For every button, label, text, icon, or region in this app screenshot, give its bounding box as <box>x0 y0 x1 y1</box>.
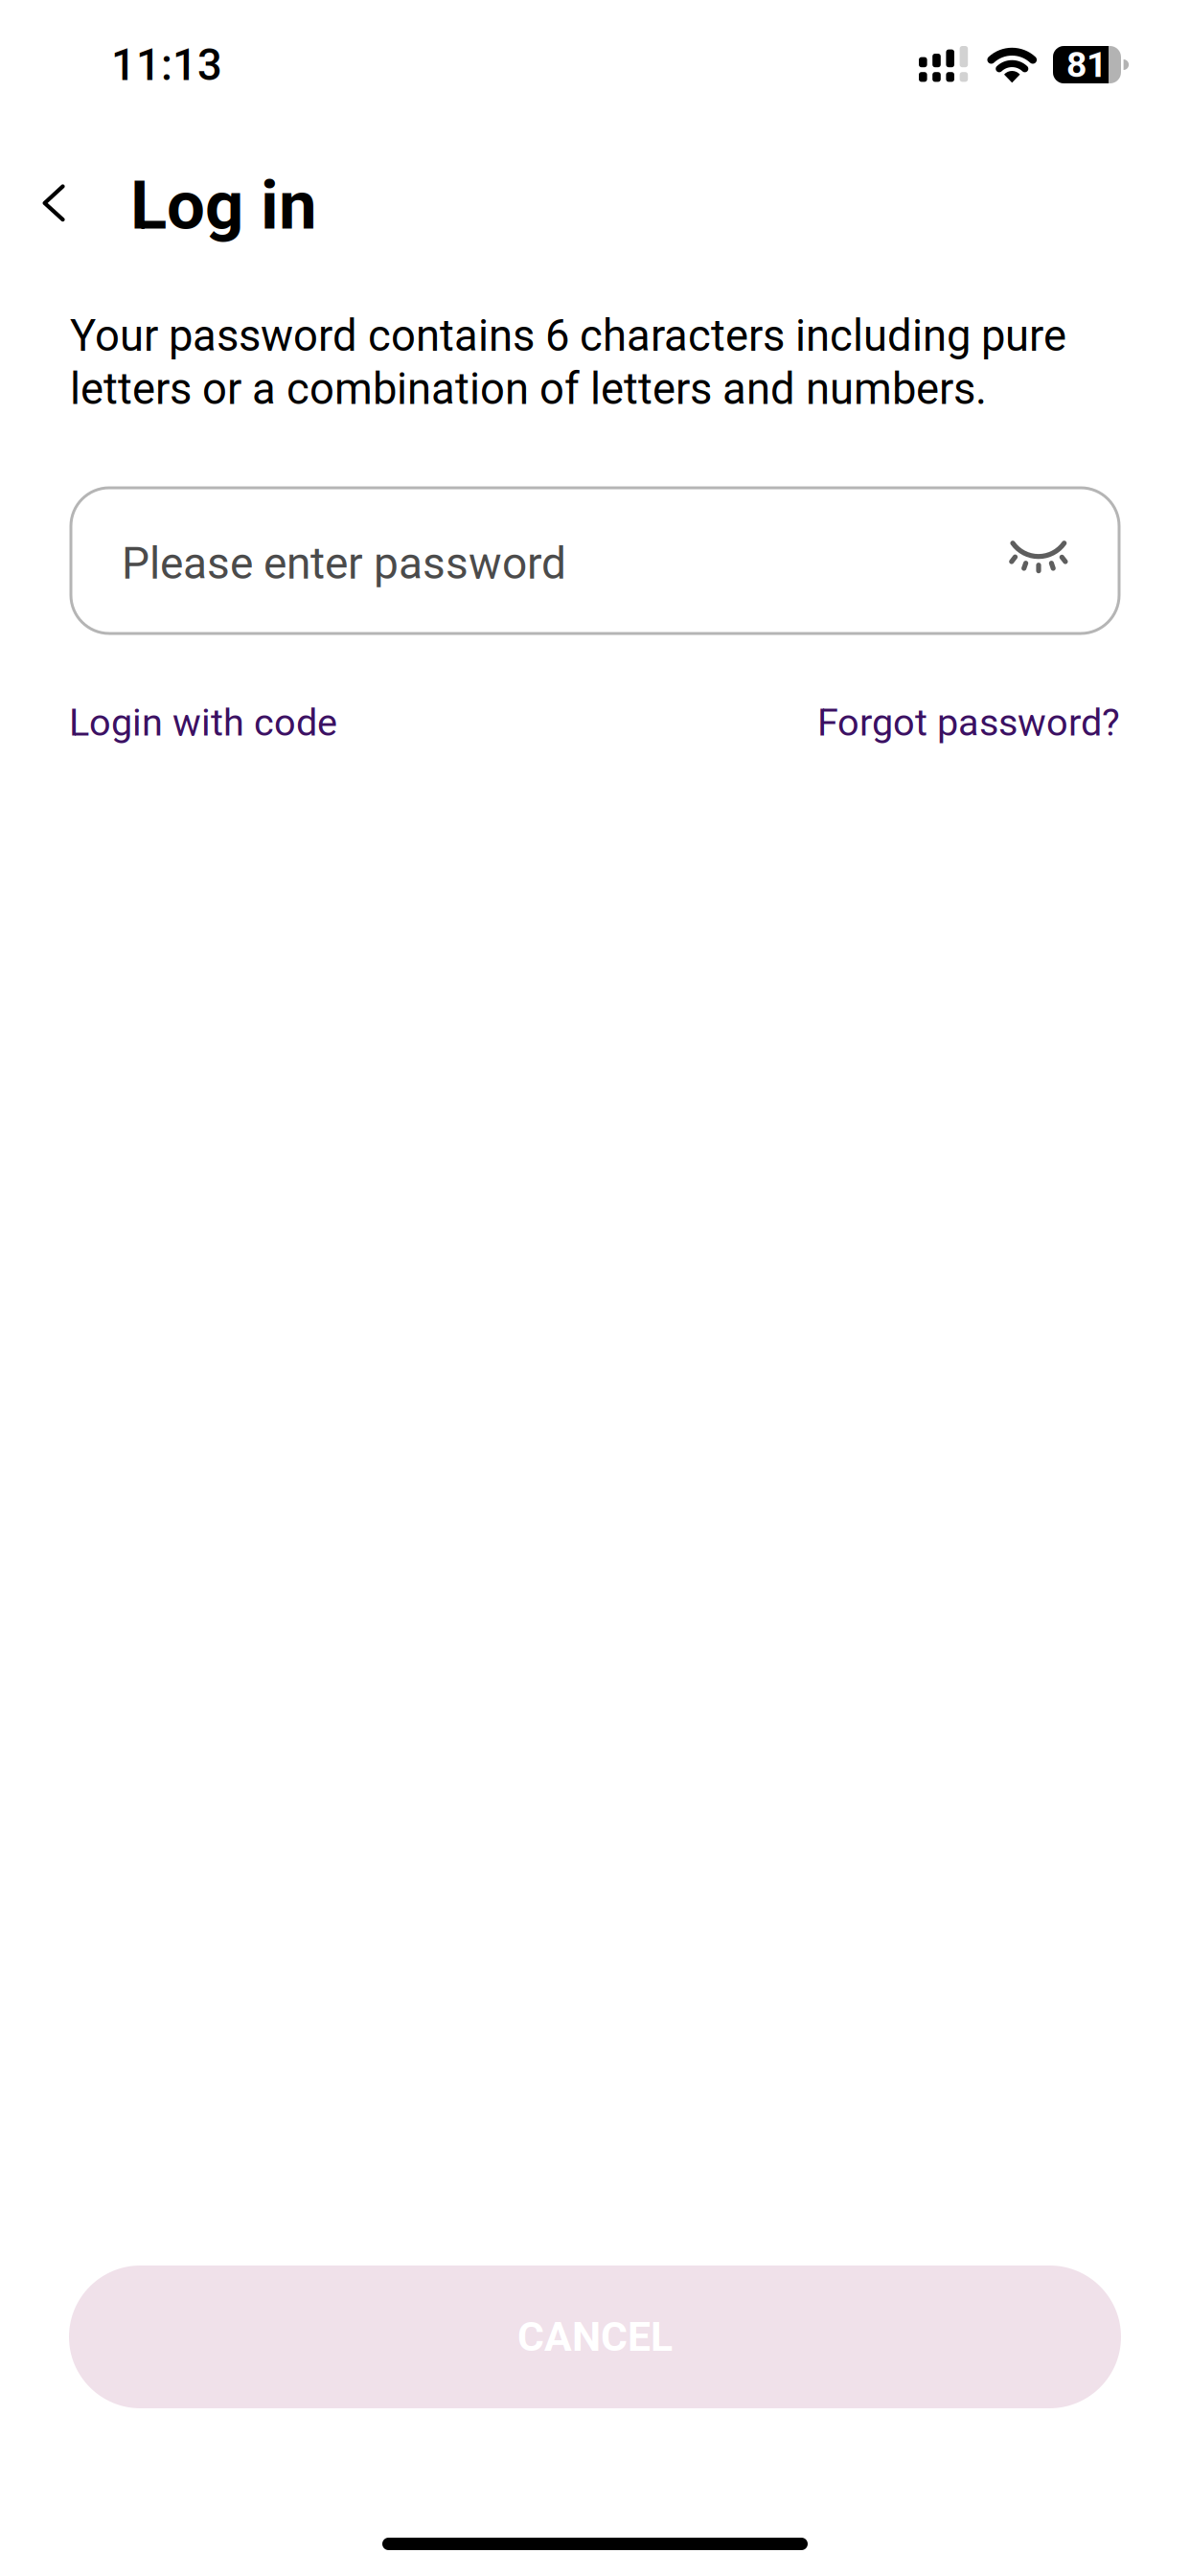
staticText: Login with code <box>69 700 337 745</box>
staticText: 81 <box>1066 44 1107 86</box>
button[interactable]: Forgot password? <box>804 693 1120 752</box>
button[interactable]: Back <box>10 157 102 249</box>
staticText: Log in <box>130 166 317 245</box>
staticText: 11:13 <box>111 40 222 91</box>
button[interactable]: Show password <box>986 503 1091 609</box>
staticText: Please enter password <box>122 538 566 589</box>
button[interactable]: Login with code <box>69 693 356 752</box>
staticText: CANCEL <box>517 2313 673 2361</box>
button[interactable]: CANCEL <box>69 2265 1121 2408</box>
button[interactable]: Please enter password <box>71 488 1119 633</box>
staticText: Forgot password? <box>817 700 1120 745</box>
staticText: Your password contains 6 characters incl… <box>70 310 1066 415</box>
